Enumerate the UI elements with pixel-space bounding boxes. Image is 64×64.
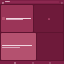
button[interactable]: Browse bbox=[30, 61, 35, 64]
button[interactable] bbox=[34, 5, 63, 32]
button[interactable]: Library bbox=[5, 1, 59, 3]
button[interactable]: Profile bbox=[47, 61, 52, 64]
staticText: Library bbox=[5, 1, 10, 3]
button[interactable]: Menu bbox=[1, 1, 4, 4]
button[interactable] bbox=[1, 33, 36, 60]
button[interactable]: Home bbox=[12, 61, 17, 64]
button[interactable] bbox=[1, 5, 33, 32]
button[interactable]: Search bbox=[60, 1, 63, 4]
